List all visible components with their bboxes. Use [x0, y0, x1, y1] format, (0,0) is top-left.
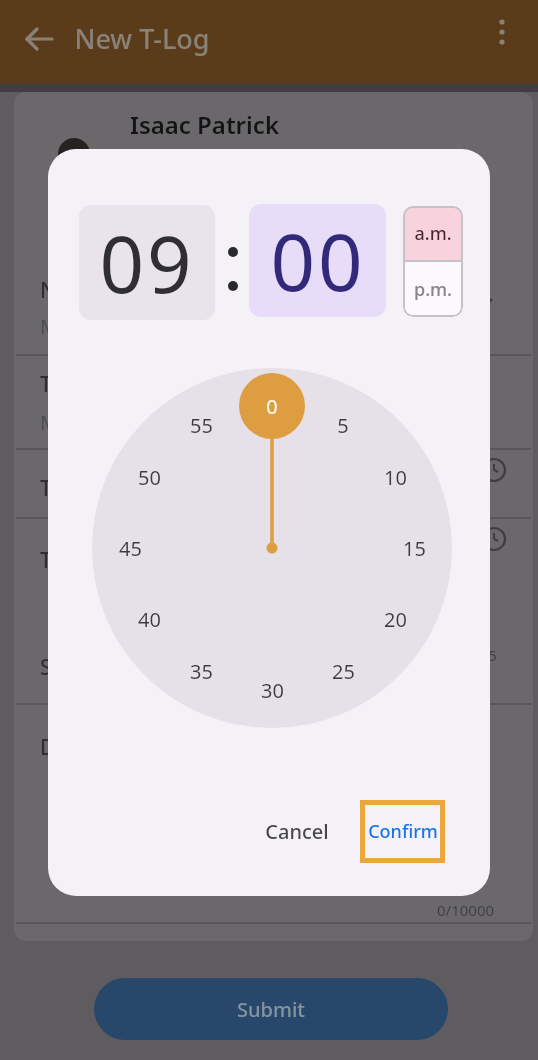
staticText: p.m. [414, 277, 452, 302]
staticText: Mar 9 [40, 409, 95, 436]
button[interactable]: Cancel [257, 813, 337, 849]
staticText: Time In [40, 474, 116, 503]
staticText: 00 [270, 208, 366, 314]
staticText: 50 [138, 464, 161, 491]
button[interactable]: 00 [249, 204, 386, 317]
staticText: 45 [119, 535, 142, 562]
staticText: a.m. [414, 221, 452, 246]
staticText: Description [40, 733, 156, 762]
staticText: 55 [190, 412, 213, 439]
staticText: 25 [332, 658, 355, 685]
button[interactable]: p.m. [403, 262, 463, 317]
staticText: Morning [40, 313, 121, 340]
staticText: 40 [138, 606, 161, 633]
staticText: Summary [40, 653, 137, 682]
button[interactable]: Confirm [360, 800, 445, 863]
button[interactable] [480, 15, 524, 59]
button[interactable]: 09 [79, 205, 215, 320]
staticText: 15 [403, 535, 426, 562]
staticText: 30 [261, 677, 284, 704]
staticText: 5 [337, 412, 349, 439]
button[interactable] [16, 15, 64, 63]
staticText: Time [40, 370, 90, 399]
staticText: New T-Log [74, 20, 210, 57]
staticText: 35 [190, 658, 213, 685]
staticText: 0/10000 [437, 900, 495, 920]
staticText: Isaac Patrick [130, 108, 279, 141]
staticText: 0/255 [457, 645, 497, 665]
staticText: Submit [237, 996, 305, 1023]
staticText: Confirm [368, 819, 438, 844]
staticText: 0 [266, 393, 278, 420]
staticText: Cancel [265, 818, 329, 845]
staticText: 20 [384, 606, 407, 633]
staticText: 09 [99, 210, 195, 316]
button[interactable]: Submit [94, 978, 448, 1040]
staticText: Time Out [40, 546, 133, 575]
staticText: 10 [384, 464, 407, 491]
staticText: Name [40, 276, 101, 305]
button[interactable]: a.m. [403, 206, 463, 260]
